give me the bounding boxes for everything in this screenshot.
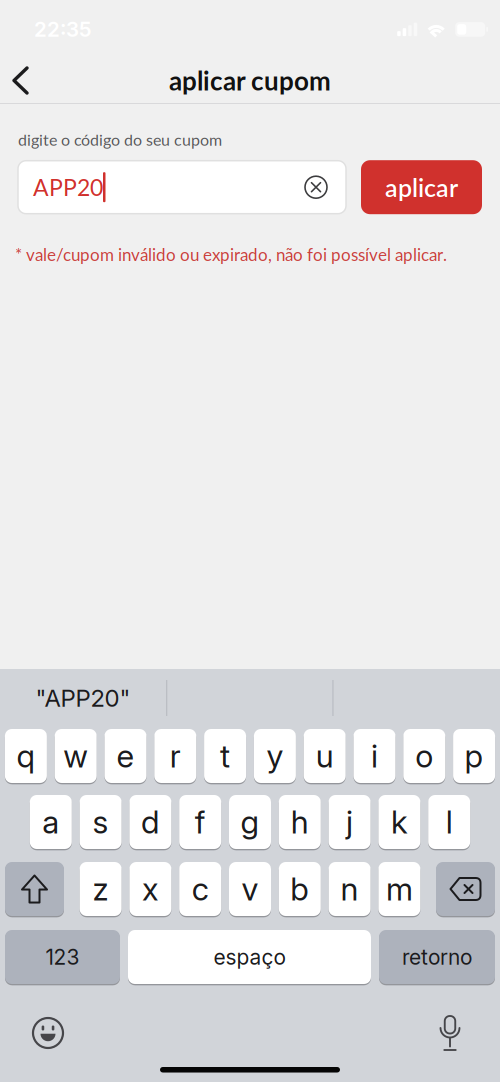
- staticText: h: [291, 803, 309, 841]
- button[interactable]: Apagar: [436, 862, 495, 916]
- button[interactable]: z: [80, 862, 122, 916]
- staticText: retorno: [402, 944, 472, 970]
- staticText: j: [346, 803, 353, 841]
- button[interactable]: t: [204, 729, 246, 783]
- staticText: b: [290, 870, 309, 908]
- button[interactable]: w: [55, 729, 97, 783]
- staticText: f: [195, 803, 206, 841]
- staticText: "APP20": [35, 683, 130, 712]
- staticText: espaço: [213, 944, 285, 970]
- staticText: k: [391, 803, 408, 841]
- button[interactable]: Voltar: [0, 60, 37, 101]
- button[interactable]: retorno: [379, 930, 495, 984]
- staticText: r: [170, 737, 181, 775]
- staticText: digite o código do seu cupom: [18, 130, 222, 149]
- staticText: c: [192, 870, 209, 908]
- button[interactable]: Shift: [5, 862, 64, 916]
- staticText: d: [141, 803, 160, 841]
- button[interactable]: d: [129, 795, 171, 849]
- staticText: t: [220, 737, 230, 775]
- button[interactable]: o: [403, 729, 445, 783]
- button[interactable]: c: [179, 862, 221, 916]
- staticText: l: [446, 803, 453, 841]
- button[interactable]: u: [304, 729, 346, 783]
- button[interactable]: Emoji: [0, 1018, 63, 1048]
- staticText: e: [116, 737, 134, 775]
- staticText: 22:35: [34, 17, 92, 42]
- staticText: g: [240, 803, 259, 841]
- button[interactable]: b: [279, 862, 321, 916]
- button[interactable]: s: [80, 795, 122, 849]
- button[interactable]: v: [229, 862, 271, 916]
- button[interactable]: l: [428, 795, 470, 849]
- button[interactable]: g: [229, 795, 271, 849]
- staticText: u: [316, 737, 334, 775]
- staticText: m: [386, 870, 413, 908]
- button[interactable]: 123: [5, 930, 120, 984]
- button[interactable]: aplicar: [361, 160, 482, 214]
- button[interactable]: f: [179, 795, 221, 849]
- staticText: * vale/cupom inválido ou expirado, não f…: [15, 244, 447, 265]
- button[interactable]: h: [279, 795, 321, 849]
- staticText: x: [142, 870, 159, 908]
- staticText: q: [16, 737, 35, 775]
- button[interactable]: m: [378, 862, 420, 916]
- button[interactable]: n: [329, 862, 371, 916]
- staticText: p: [465, 737, 484, 775]
- staticText: APP20: [33, 173, 103, 201]
- staticText: n: [341, 870, 359, 908]
- staticText: aplicar: [385, 172, 458, 202]
- staticText: i: [371, 737, 378, 775]
- staticText: o: [415, 737, 433, 775]
- staticText: y: [266, 737, 283, 775]
- button[interactable]: e: [104, 729, 146, 783]
- staticText: 123: [45, 944, 79, 970]
- button[interactable]: i: [353, 729, 395, 783]
- staticText: z: [93, 870, 109, 908]
- button[interactable]: espaço: [128, 930, 371, 984]
- button[interactable]: Ditado: [439, 1016, 500, 1050]
- button[interactable]: x: [129, 862, 171, 916]
- staticText: v: [241, 870, 258, 908]
- button[interactable]: p: [453, 729, 495, 783]
- button[interactable]: r: [154, 729, 196, 783]
- staticText: w: [63, 737, 88, 775]
- button[interactable]: y: [254, 729, 296, 783]
- button[interactable]: "APP20": [0, 669, 166, 727]
- staticText: a: [42, 803, 59, 841]
- button[interactable]: k: [378, 795, 420, 849]
- button[interactable]: q: [5, 729, 47, 783]
- staticText: s: [93, 803, 109, 841]
- staticText: aplicar cupom: [169, 65, 331, 96]
- button[interactable]: j: [329, 795, 371, 849]
- button[interactable]: Limpar: [301, 172, 331, 202]
- button[interactable]: a: [30, 795, 72, 849]
